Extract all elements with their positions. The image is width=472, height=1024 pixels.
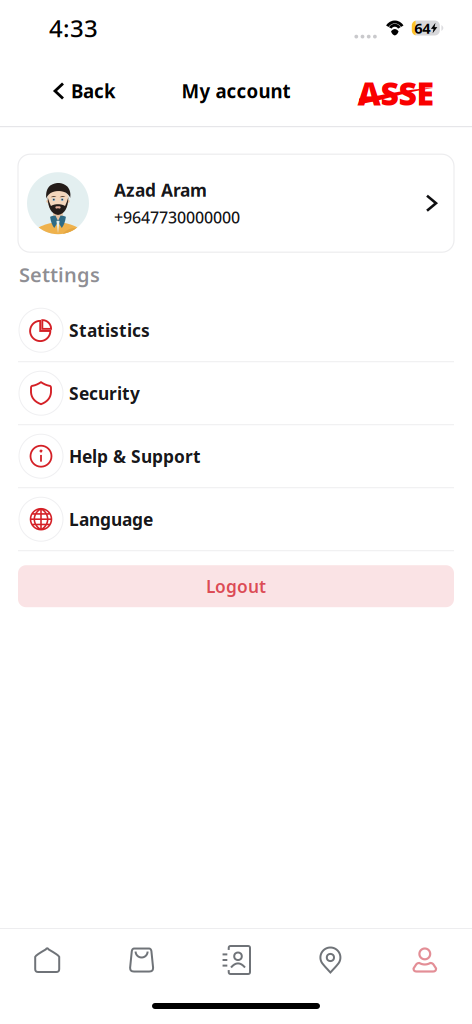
staticText: Logout [206, 575, 266, 598]
button[interactable]: Azad Aram [18, 154, 454, 252]
staticText: Language [69, 508, 153, 531]
staticText: My account [181, 79, 290, 103]
button[interactable]: Language [0, 488, 472, 550]
button[interactable]: Contacts [189, 929, 283, 991]
button[interactable]: Back [49, 69, 122, 113]
staticText: Back [71, 79, 116, 103]
staticText: ASSE [357, 72, 434, 114]
staticText: Settings [19, 261, 100, 288]
staticText: Security [69, 382, 140, 405]
button[interactable]: Statistics [0, 299, 472, 361]
button[interactable]: Logout [18, 565, 454, 607]
staticText: Statistics [69, 319, 150, 342]
button[interactable]: Help & Support [0, 425, 472, 487]
staticText: Help & Support [69, 445, 201, 468]
button[interactable]: Home [0, 929, 94, 991]
button[interactable]: Security [0, 362, 472, 424]
staticText: 4:33 [49, 12, 98, 44]
button[interactable]: Account [378, 929, 472, 991]
button[interactable]: Shop [94, 929, 189, 991]
staticText: +9647730000000 [114, 207, 240, 228]
button[interactable]: Location [283, 929, 378, 991]
staticText: 64 [414, 18, 430, 38]
staticText: Azad Aram [114, 179, 207, 202]
